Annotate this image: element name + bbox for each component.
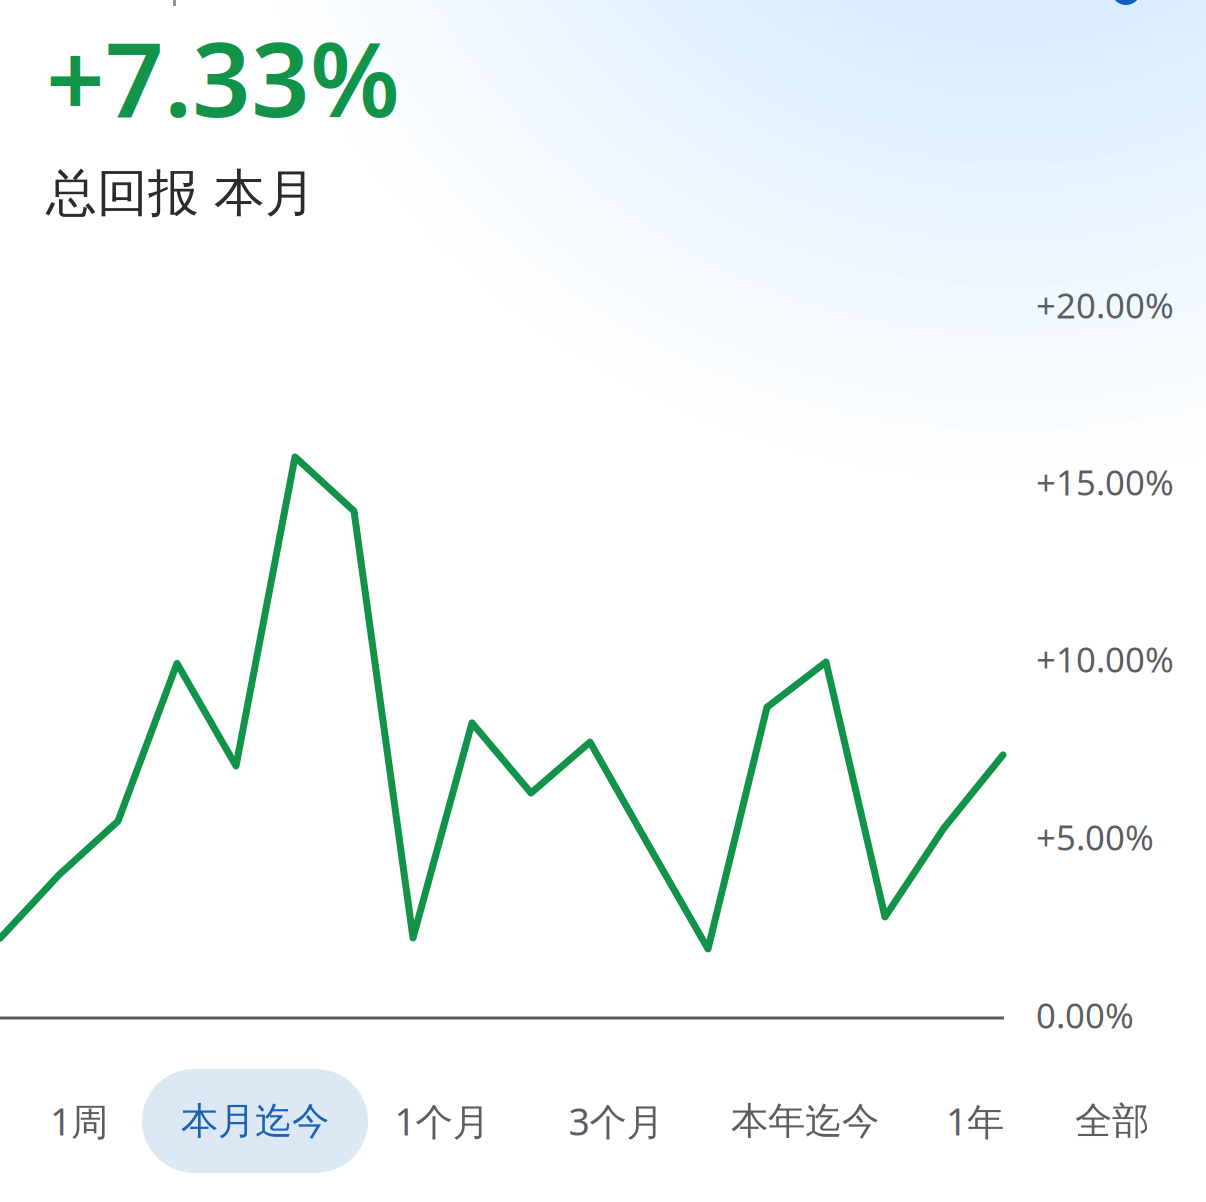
button[interactable]: 3个月 [546, 1063, 685, 1179]
button[interactable]: 全部 [1053, 1065, 1171, 1177]
staticText: 本月迄今 [181, 1098, 329, 1144]
staticText: 3个月 [568, 1096, 663, 1146]
staticText: 1年 [946, 1096, 1004, 1146]
staticText: +20.00% [1036, 282, 1174, 328]
button[interactable]: 1年 [924, 1063, 1026, 1179]
staticText: +15.00% [1036, 459, 1174, 505]
staticText: 本年迄今 [731, 1098, 879, 1144]
staticText: 0.00% [1036, 992, 1134, 1038]
staticText: 总回报 本月 [46, 162, 316, 224]
staticText: +5.00% [1036, 814, 1154, 860]
staticText: +7.33% [46, 9, 400, 145]
button[interactable]: 1个月 [372, 1063, 511, 1179]
staticText: +10.00% [1036, 636, 1174, 682]
staticText: 1周 [50, 1096, 108, 1146]
staticText: 1个月 [394, 1096, 489, 1146]
button[interactable]: 本月迄今 [142, 1069, 368, 1173]
button[interactable]: 1周 [28, 1063, 130, 1179]
staticText: 全部 [1075, 1098, 1149, 1144]
button[interactable]: 本年迄今 [709, 1065, 901, 1177]
